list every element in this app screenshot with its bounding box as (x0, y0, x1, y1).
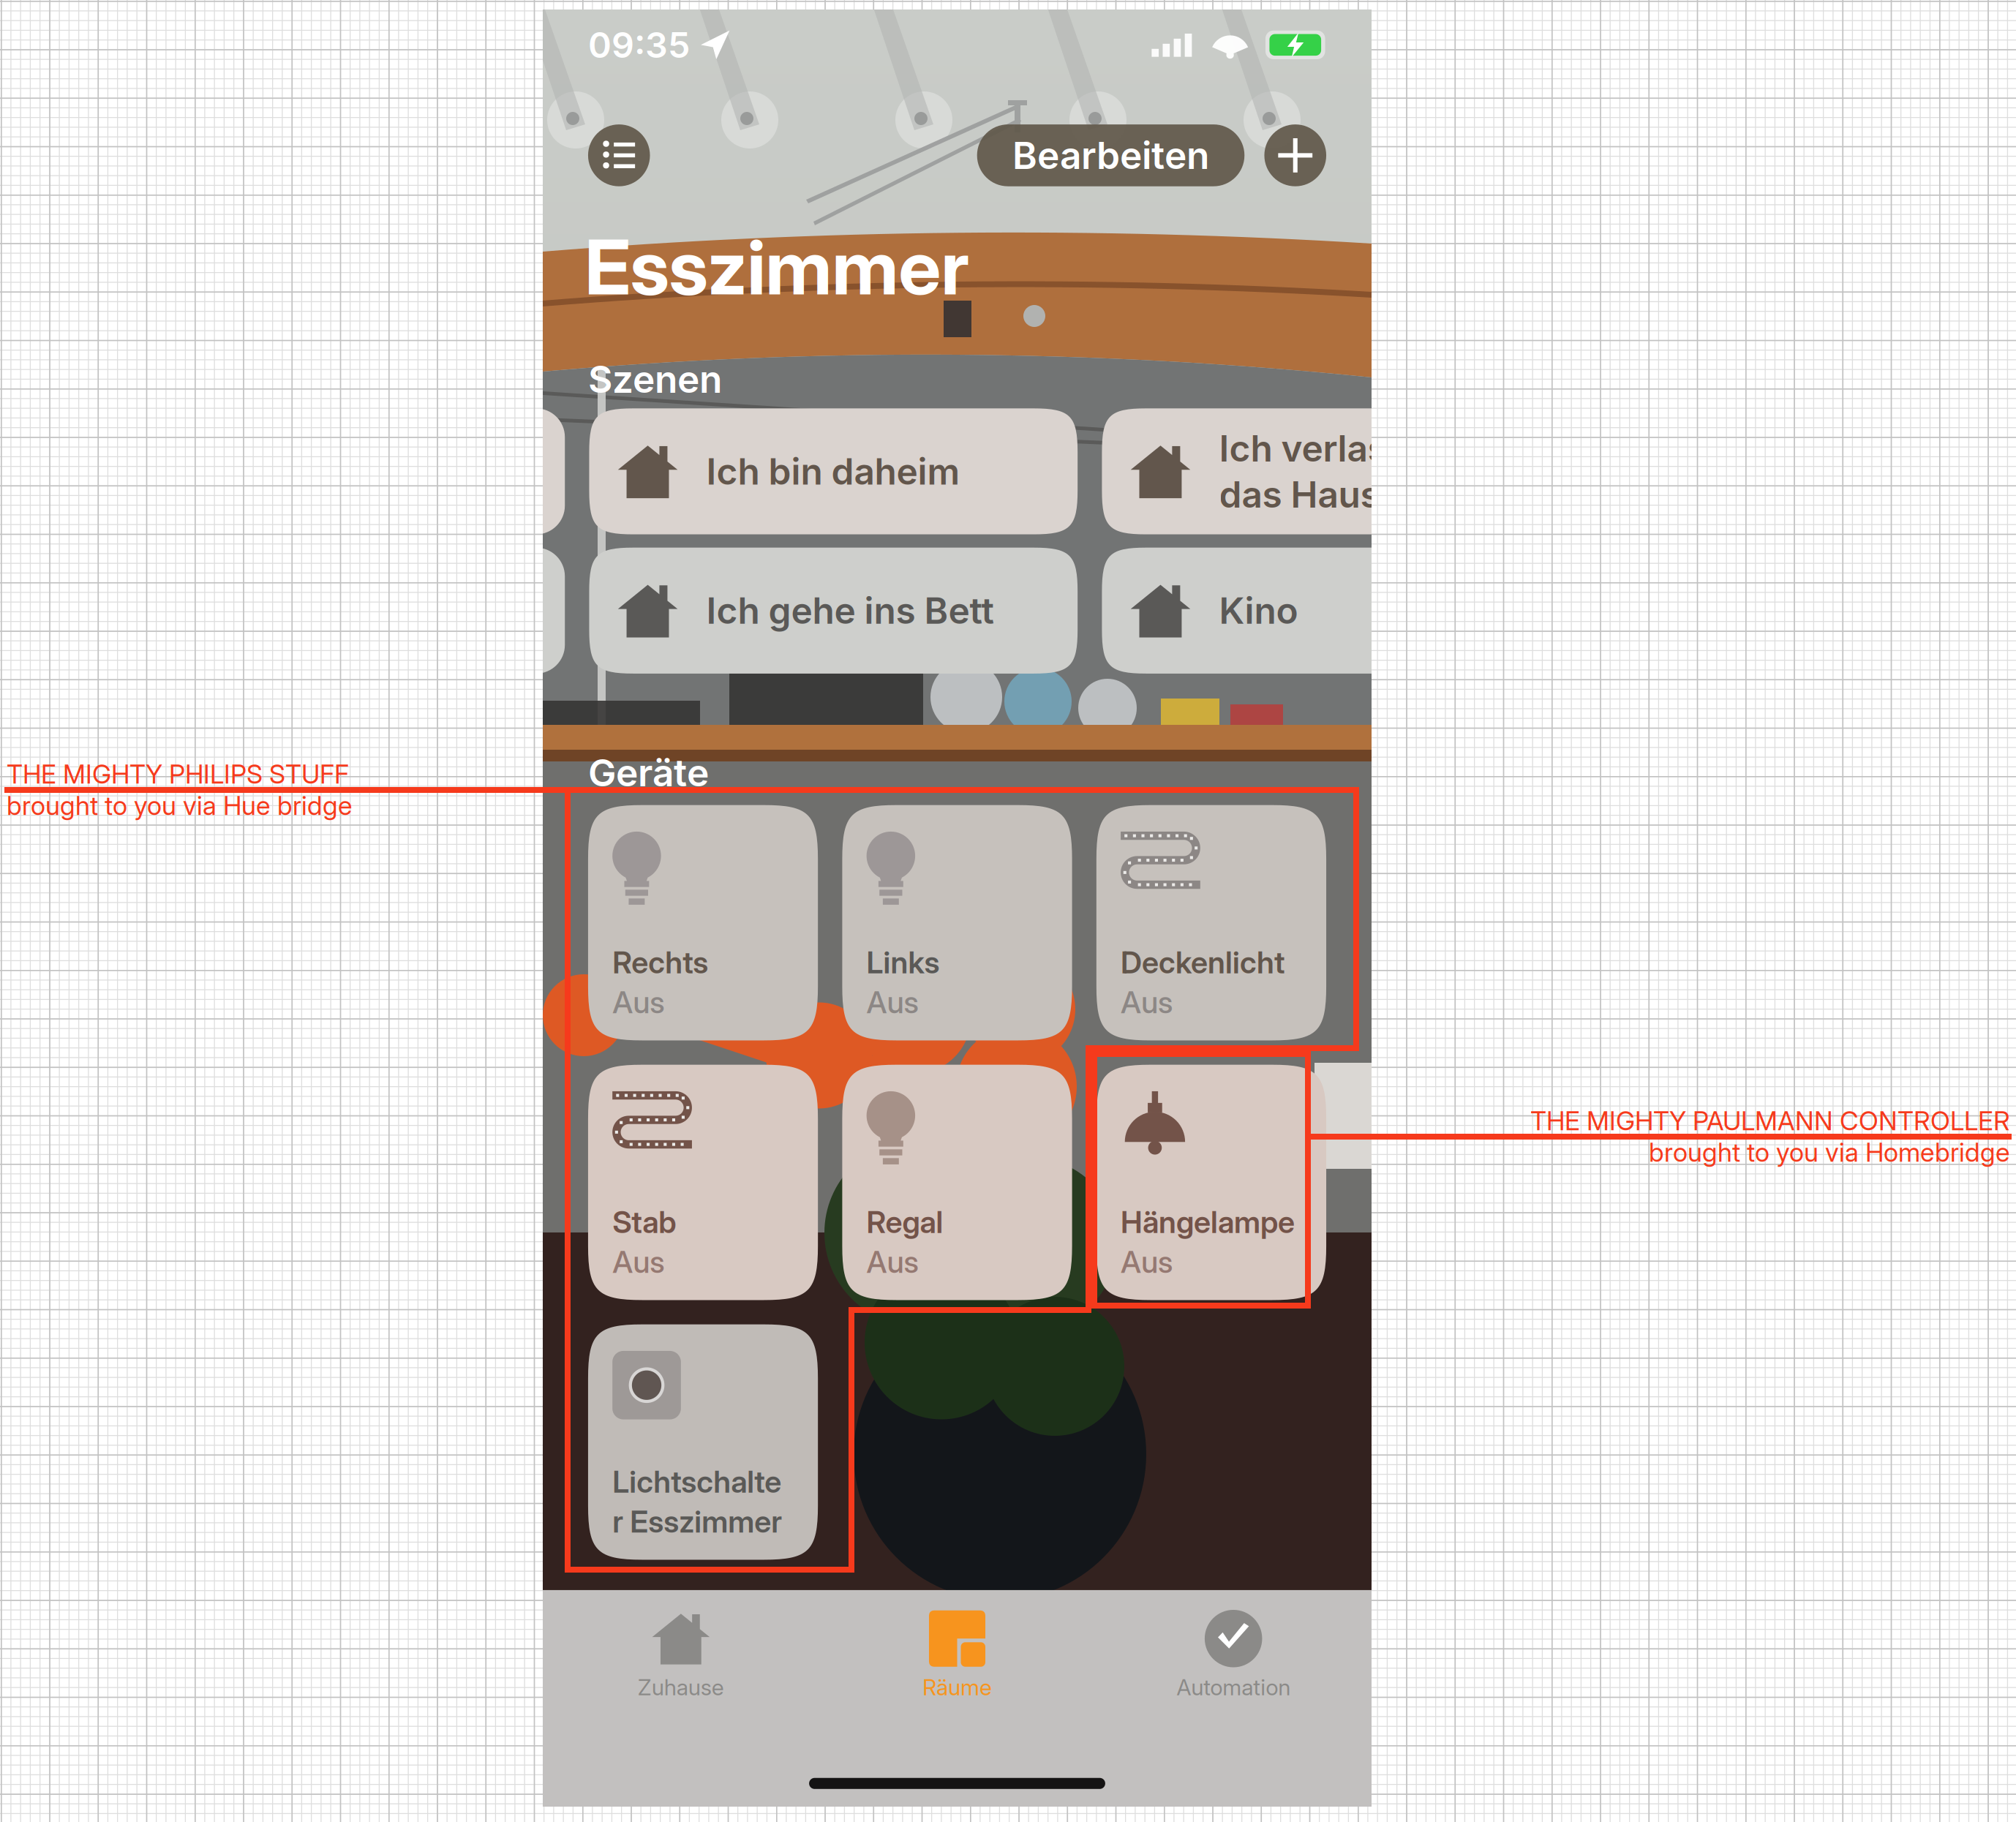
staticText: Aus (867, 1244, 918, 1280)
staticText: Ich bin daheim (706, 449, 960, 493)
button[interactable]: Hinzufügen (1264, 124, 1326, 186)
staticText: Bearbeiten (1012, 133, 1209, 178)
staticText: Aus (612, 984, 664, 1021)
staticText: brought to you via Homebridge (1649, 1137, 2010, 1168)
button[interactable]: Hängelampe (1096, 1065, 1326, 1300)
staticText: Aus (612, 1244, 664, 1280)
button[interactable]: Ich gehe ins Bett (589, 548, 1078, 674)
staticText: Stab (612, 1204, 676, 1240)
staticText: Automation (1176, 1674, 1291, 1701)
staticText: Regal (867, 1204, 943, 1240)
button[interactable]: Räume (819, 1601, 1095, 1707)
staticText: brought to you via Hue bridge (7, 790, 353, 821)
button[interactable]: Zuhause (543, 1601, 819, 1707)
staticText: Kino (1219, 589, 1298, 633)
staticText: Deckenlicht (1121, 944, 1285, 981)
staticText: Esszimmer (585, 222, 969, 313)
staticText: THE MIGHTY PAULMANN CONTROLLER (1530, 1105, 2010, 1137)
button[interactable]: Rechts (588, 805, 818, 1040)
staticText: r Esszimmer (612, 1503, 782, 1540)
staticText: das Haus (1219, 473, 1380, 516)
button[interactable]: Links (842, 805, 1072, 1040)
staticText: Zuhause (638, 1674, 724, 1701)
button[interactable]: Bearbeiten (977, 124, 1244, 186)
staticText: Aus (867, 984, 918, 1021)
staticText: Szenen (588, 356, 722, 402)
staticText: Links (867, 944, 940, 981)
staticText: Aus (1121, 1244, 1173, 1280)
button[interactable]: Listenansicht (588, 124, 650, 186)
staticText: 09:35 (588, 23, 690, 66)
staticText: Hängelampe (1121, 1204, 1295, 1240)
staticText: Räume (922, 1674, 992, 1701)
staticText: Aus (1121, 984, 1173, 1021)
button[interactable]: Regal (842, 1065, 1072, 1300)
staticText: Ich gehe ins Bett (706, 589, 994, 633)
button[interactable]: Deckenlicht (1096, 805, 1326, 1040)
button[interactable]: Automation (1095, 1601, 1372, 1707)
staticText: Ich verlasse (1219, 426, 1428, 470)
button[interactable]: Stab (588, 1065, 818, 1300)
staticText: Lichtschalte (612, 1463, 781, 1500)
button[interactable]: Ich verlasse (1102, 408, 1590, 534)
button[interactable]: Lichtschalte (588, 1324, 818, 1560)
staticText: Rechts (612, 944, 708, 981)
button[interactable]: Ich bin daheim (589, 408, 1078, 534)
button[interactable]: Kino (1102, 548, 1590, 674)
staticText: THE MIGHTY PHILIPS STUFF (7, 758, 349, 790)
staticText: Geräte (588, 750, 709, 795)
